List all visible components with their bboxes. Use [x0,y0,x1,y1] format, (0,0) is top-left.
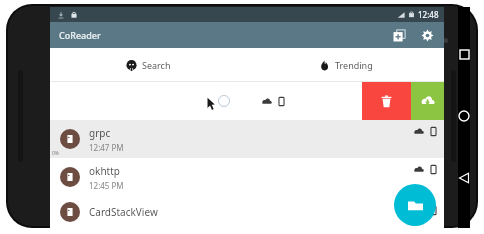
button[interactable]: Open folder [394,184,436,226]
staticText: 12:48 [418,9,439,20]
button[interactable]: Download [411,82,444,120]
staticText: 0% [52,150,60,157]
button[interactable]: Recent apps [458,43,470,65]
button[interactable]: Back [458,167,470,189]
staticText: Trending [335,59,373,71]
button[interactable]: okhttp [50,158,444,196]
button[interactable]: grpc [50,120,444,158]
button[interactable]: Search [50,48,247,81]
staticText: Search [142,59,171,71]
button[interactable]: Settings [417,25,437,45]
staticText: 12:45 PM [89,180,124,191]
staticText: 12:47 PM [89,142,124,153]
staticText: grpc [89,126,111,140]
button[interactable]: Delete [362,82,411,120]
button[interactable]: CardStackView [50,196,444,228]
button[interactable]: Trending [247,48,444,81]
button[interactable]: Add to library [389,25,409,45]
staticText: CoReader [59,29,101,41]
button[interactable]: Home [458,105,470,127]
staticText: okhttp [89,164,120,178]
staticText: CardStackView [89,205,158,219]
